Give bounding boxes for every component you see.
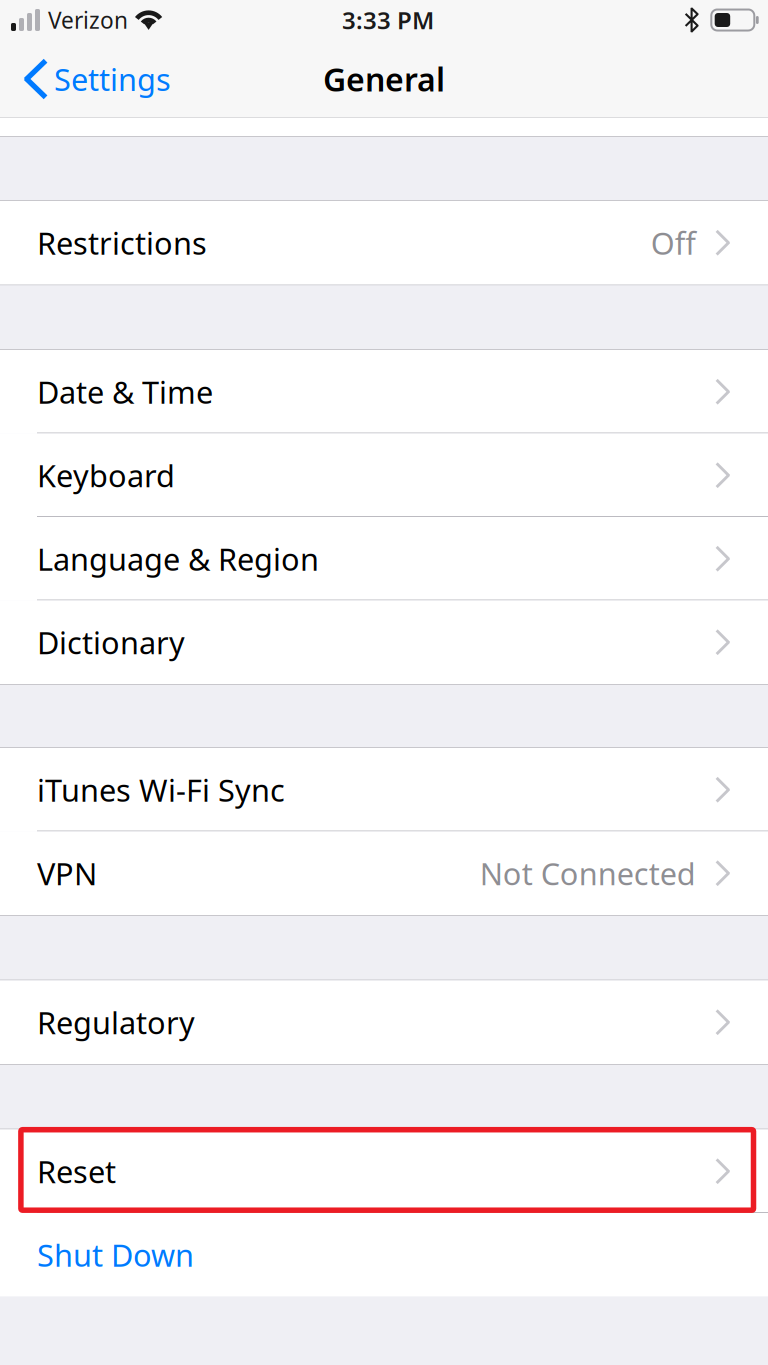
button[interactable]: Reset bbox=[0, 1129, 768, 1213]
staticText: Reset bbox=[37, 1151, 116, 1192]
staticText: VPN bbox=[37, 853, 97, 894]
button[interactable]: Regulatory bbox=[0, 980, 768, 1064]
staticText: Shut Down bbox=[37, 1234, 194, 1275]
staticText: Restrictions bbox=[37, 222, 207, 263]
button[interactable]: Dictionary bbox=[0, 600, 768, 684]
staticText: Dictionary bbox=[37, 622, 185, 663]
button[interactable]: Date & Time bbox=[0, 350, 768, 433]
staticText: Language & Region bbox=[37, 538, 319, 579]
staticText: 3:33 PM bbox=[342, 4, 434, 36]
staticText: Settings bbox=[54, 59, 171, 99]
staticText: Keyboard bbox=[37, 455, 175, 496]
staticText: Not Connected bbox=[480, 853, 696, 894]
staticText: Off bbox=[651, 222, 696, 263]
button[interactable]: Restrictions bbox=[0, 201, 768, 284]
button[interactable]: Language & Region bbox=[0, 517, 768, 600]
staticText: Date & Time bbox=[37, 371, 213, 412]
button[interactable]: VPN bbox=[0, 831, 768, 915]
button[interactable]: Settings bbox=[0, 40, 185, 118]
button[interactable]: iTunes Wi-Fi Sync bbox=[0, 748, 768, 831]
staticText: iTunes Wi-Fi Sync bbox=[37, 769, 285, 810]
button[interactable]: Keyboard bbox=[0, 433, 768, 517]
button[interactable]: Shut Down bbox=[0, 1213, 768, 1296]
staticText: Regulatory bbox=[37, 1002, 195, 1043]
staticText: General bbox=[323, 58, 445, 100]
staticText: Verizon bbox=[48, 5, 128, 35]
